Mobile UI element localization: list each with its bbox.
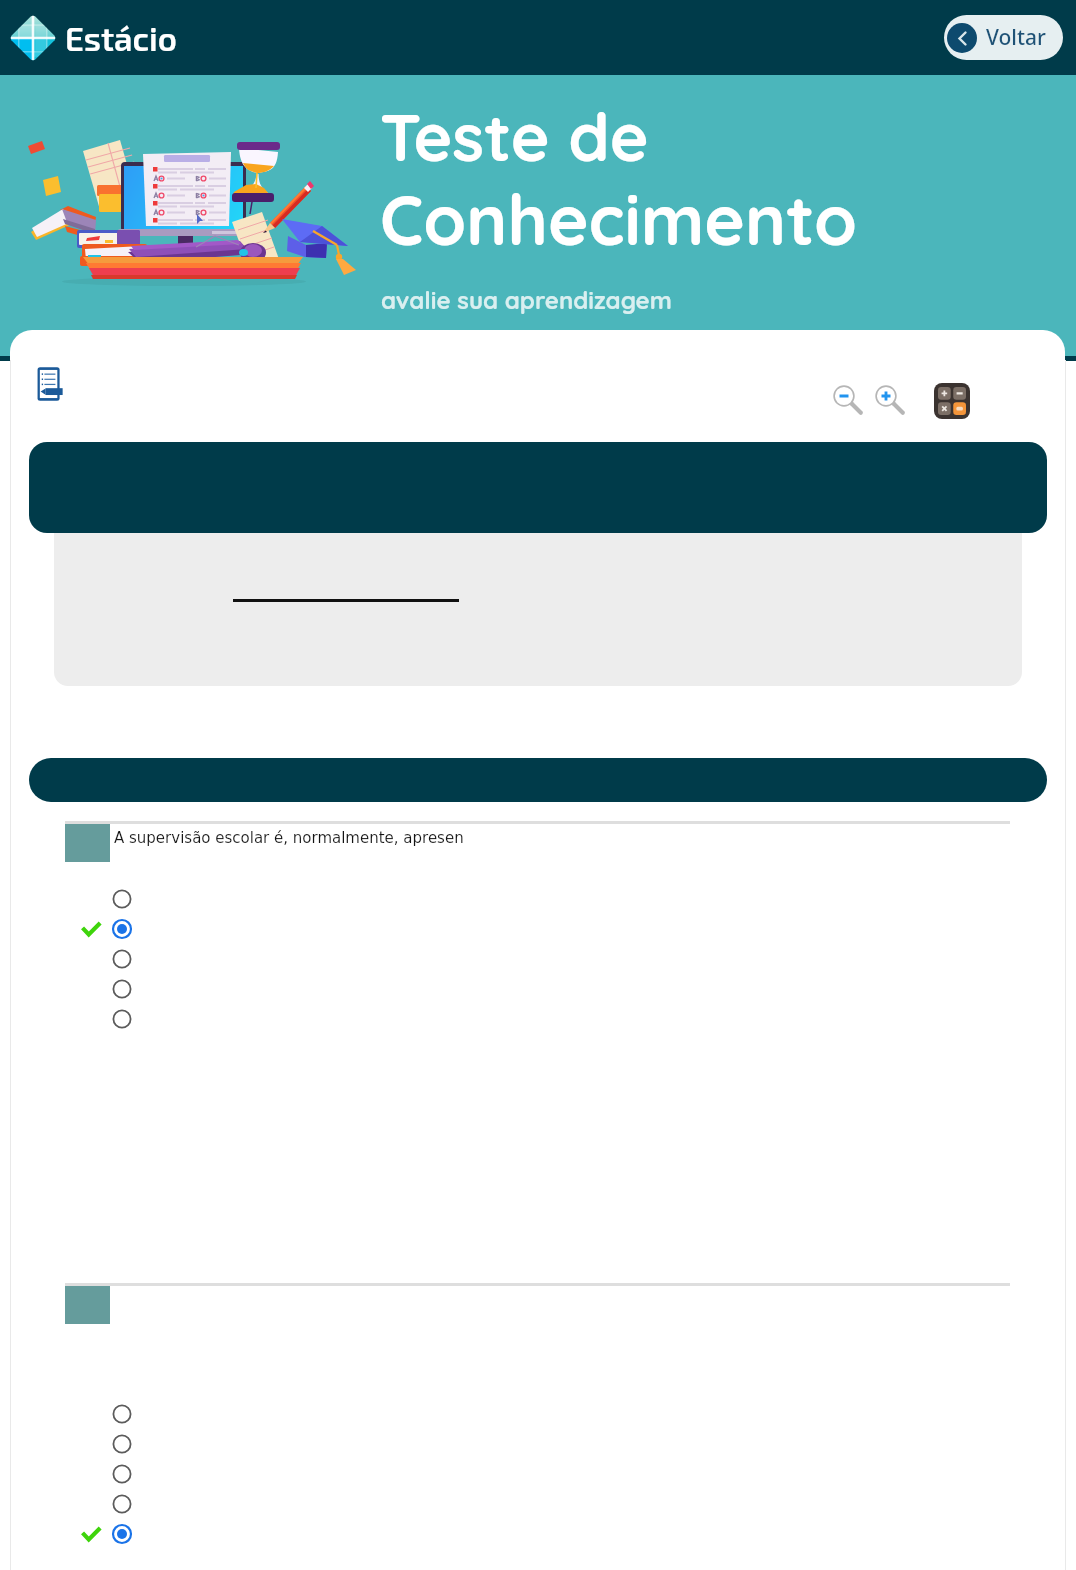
button[interactable]: Alternativa d <box>83 1489 1065 1519</box>
button[interactable]: Alternativa a <box>83 884 1065 914</box>
staticText: A supervisão escolar é, normalmente, apr… <box>114 829 464 846</box>
staticText: Voltar <box>986 23 1046 52</box>
button[interactable]: Alternativa e <box>83 1004 1065 1034</box>
button[interactable]: Alternativa a <box>83 1399 1065 1429</box>
button[interactable]: Calculadora <box>930 379 974 423</box>
staticText: Conhecimento <box>380 176 858 262</box>
staticText: Estácio <box>65 18 177 58</box>
button[interactable]: Estácio <box>10 15 177 61</box>
button[interactable]: Alternativa e (selecionada) <box>83 1519 1065 1549</box>
staticText: avalie sua aprendizagem <box>381 285 672 315</box>
button[interactable]: Alternativa d <box>83 974 1065 1004</box>
button[interactable]: Alternativa b <box>83 1429 1065 1459</box>
button[interactable]: Aumentar zoom <box>869 379 909 419</box>
button[interactable]: Alternativa b (selecionada) <box>83 914 1065 944</box>
button[interactable]: Alternativa c <box>83 944 1065 974</box>
button[interactable]: Diminuir zoom <box>827 379 867 419</box>
other: Estácio <box>10 15 56 61</box>
button[interactable]: Alternativa c <box>83 1459 1065 1489</box>
staticText: Teste de <box>380 95 649 178</box>
button[interactable]: Anotações <box>30 362 74 406</box>
button[interactable]: Voltar <box>944 15 1063 60</box>
